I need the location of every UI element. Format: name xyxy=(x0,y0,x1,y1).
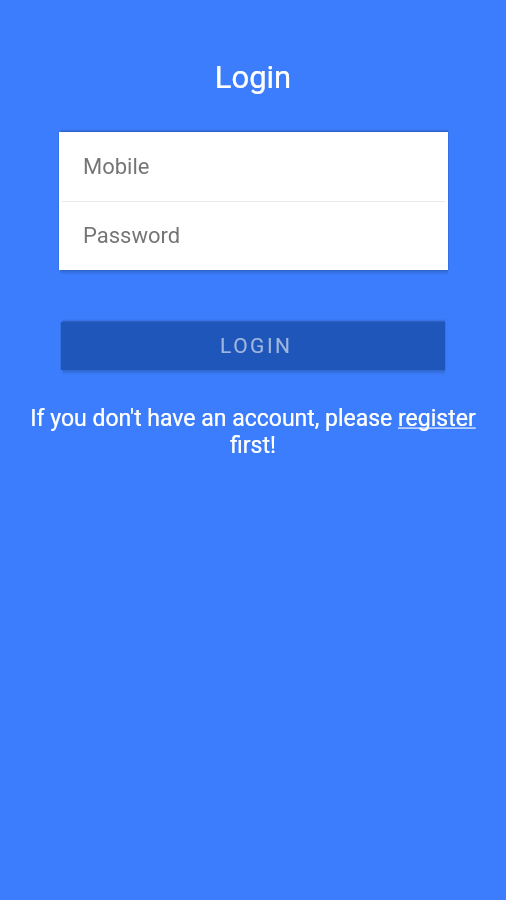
button[interactable]: Password xyxy=(59,201,448,270)
staticText: Login xyxy=(0,59,506,95)
staticText: If you don't have an account, please reg… xyxy=(0,405,506,432)
staticText: Password xyxy=(83,223,181,249)
button[interactable]: If you don't have an account, please reg… xyxy=(0,405,506,459)
staticText: LOGIN xyxy=(220,334,293,359)
staticText: first! xyxy=(0,432,506,459)
staticText: Mobile xyxy=(83,154,150,180)
button[interactable]: Mobile xyxy=(59,132,448,201)
button[interactable]: LOGIN xyxy=(61,322,445,370)
